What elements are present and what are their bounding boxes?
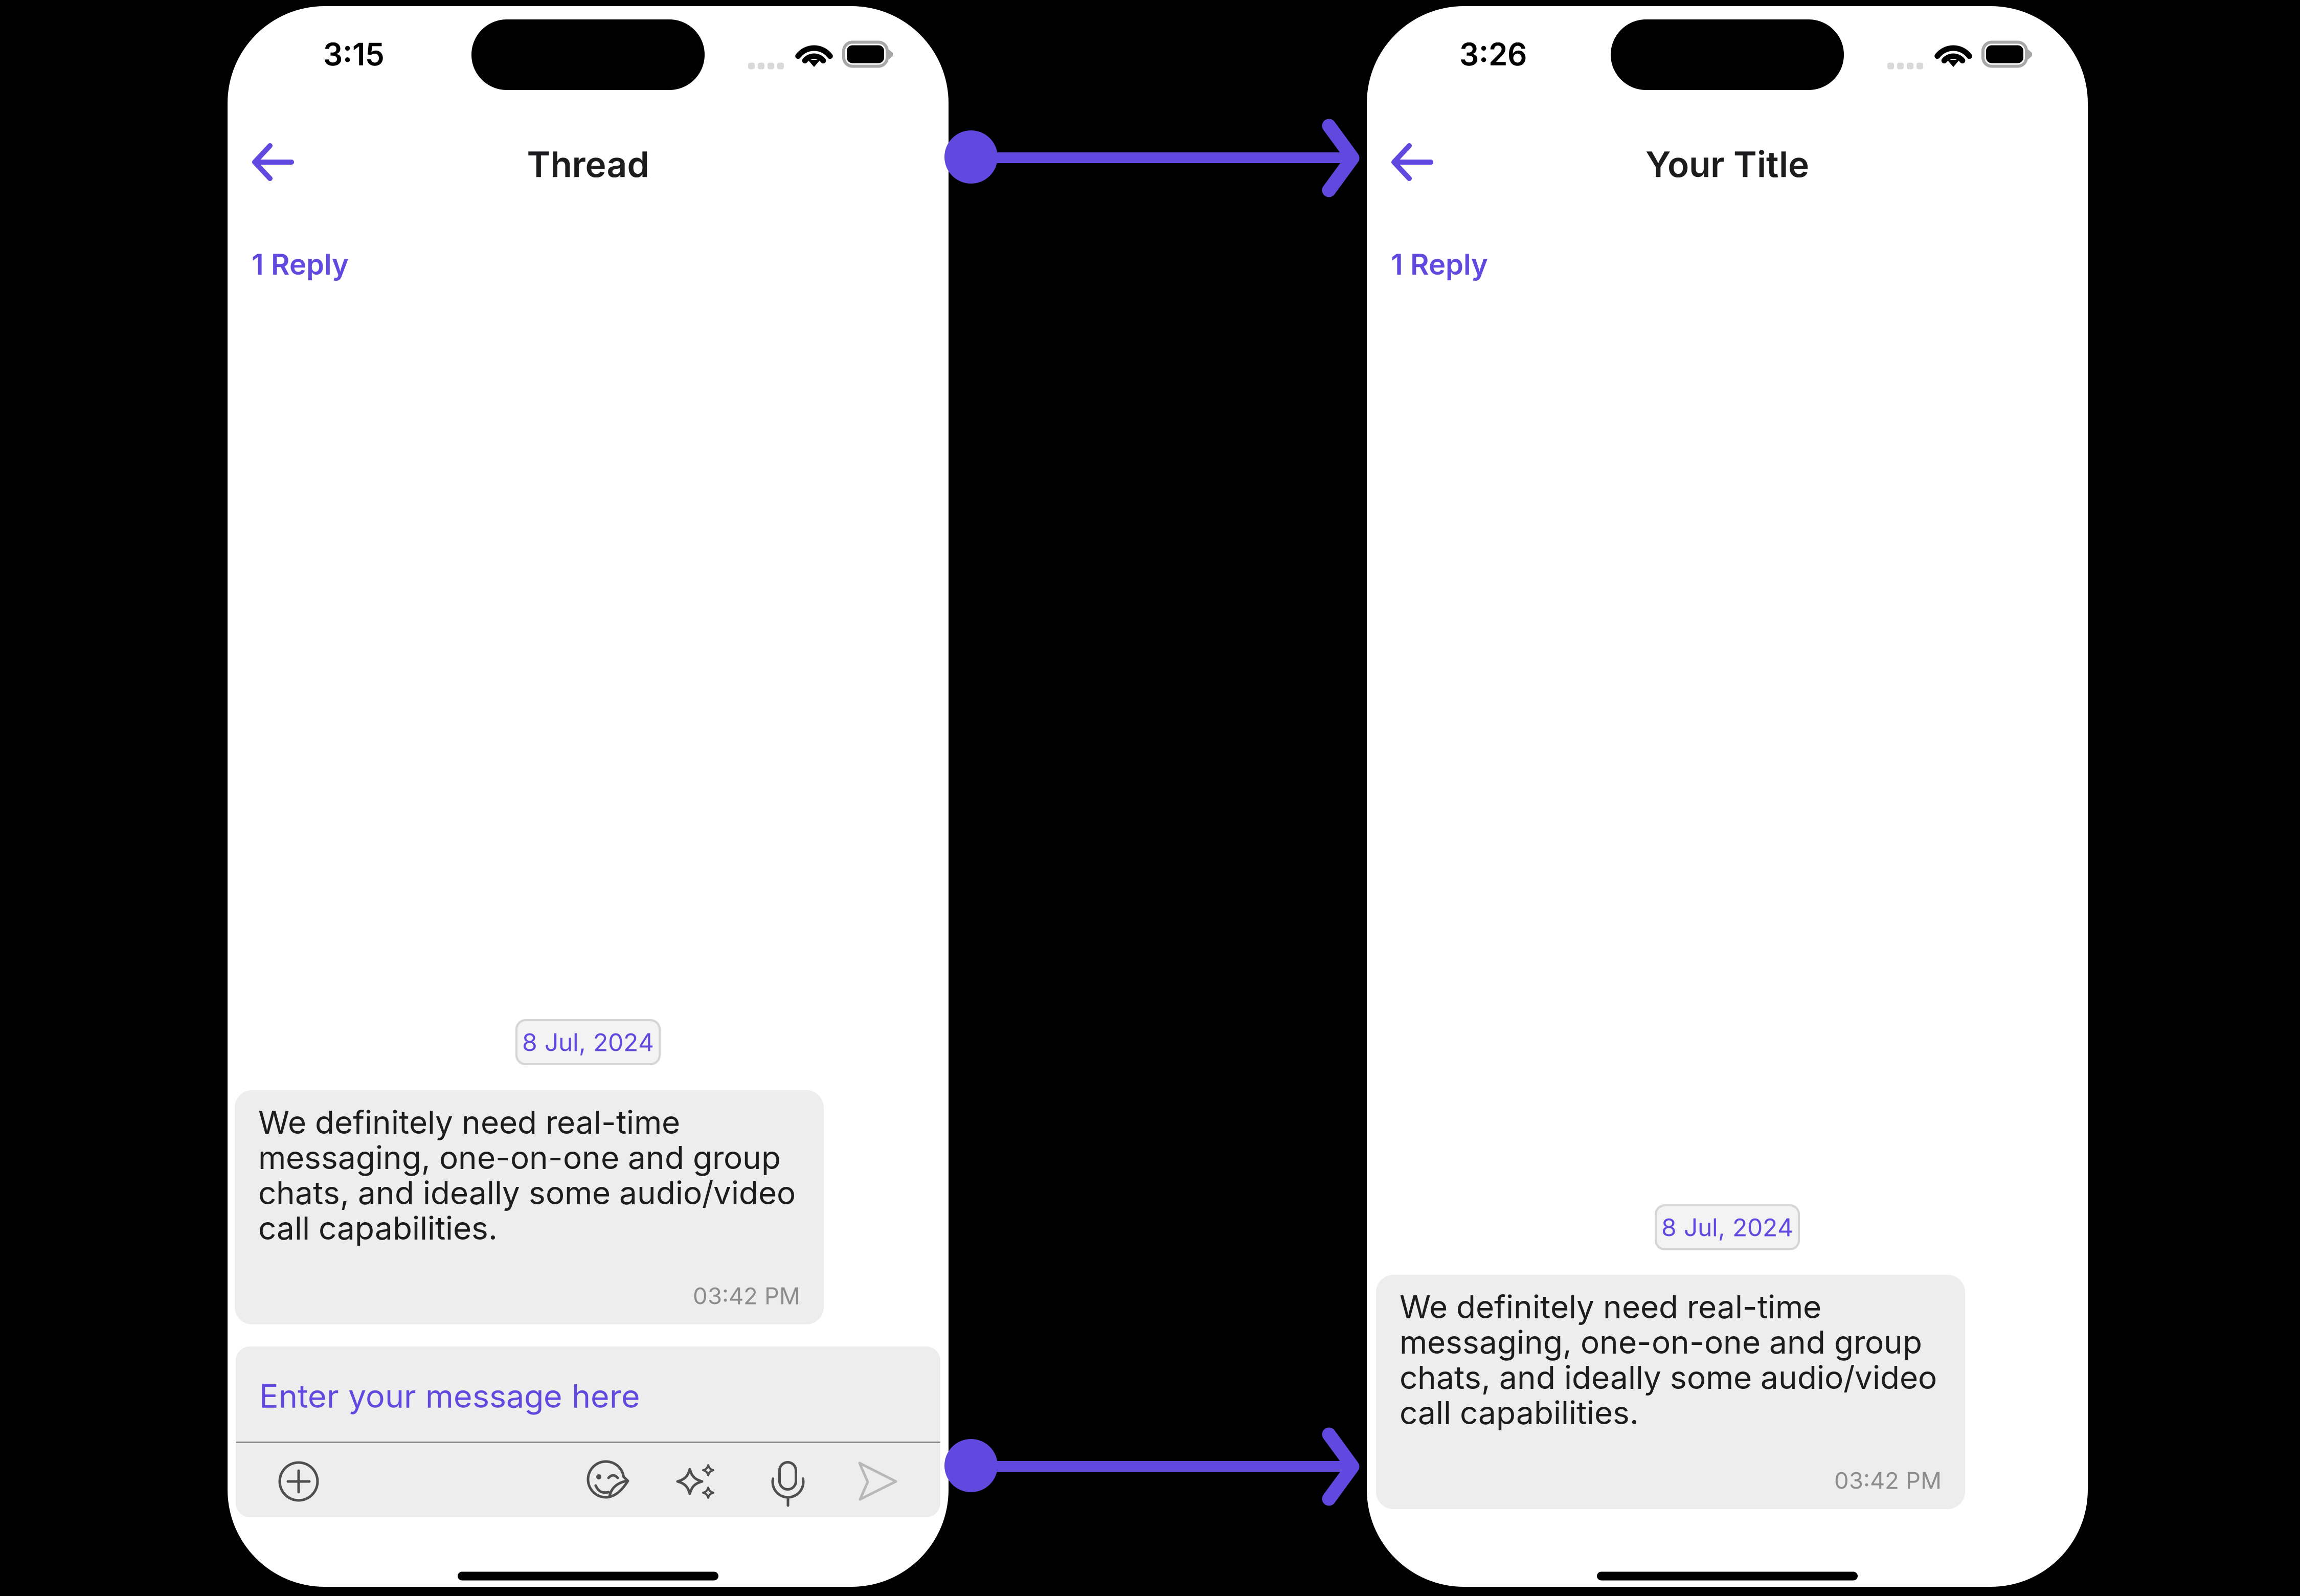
staticText: 03:42 PM — [693, 1282, 800, 1310]
button[interactable]: Send — [855, 1459, 900, 1504]
button[interactable]: Add attachment — [276, 1459, 321, 1504]
button[interactable]: Stickers — [585, 1459, 630, 1504]
button[interactable]: Smart reply — [673, 1459, 718, 1504]
staticText: 1 Reply — [1391, 247, 1488, 282]
staticText: 3:26 — [1459, 36, 1527, 73]
staticText: 3:15 — [323, 36, 385, 73]
staticText: Thread — [527, 143, 649, 186]
staticText: 8 Jul, 2024 — [1661, 1212, 1793, 1242]
staticText: 03:42 PM — [1834, 1466, 1942, 1494]
button[interactable]: 1 Reply — [250, 242, 351, 287]
staticText: 1 Reply — [252, 247, 349, 282]
staticText: Enter your message here — [259, 1377, 640, 1415]
button[interactable]: 1 Reply — [1389, 242, 1490, 287]
button[interactable]: Back — [1379, 133, 1445, 191]
staticText: We definitely need real-time messaging, … — [1400, 1288, 1937, 1432]
button[interactable]: Back — [239, 133, 306, 191]
staticText: We definitely need real-time messaging, … — [258, 1103, 796, 1247]
button[interactable]: Voice message — [765, 1459, 810, 1504]
staticText: 8 Jul, 2024 — [522, 1027, 654, 1057]
staticText: Your Title — [1645, 143, 1809, 186]
